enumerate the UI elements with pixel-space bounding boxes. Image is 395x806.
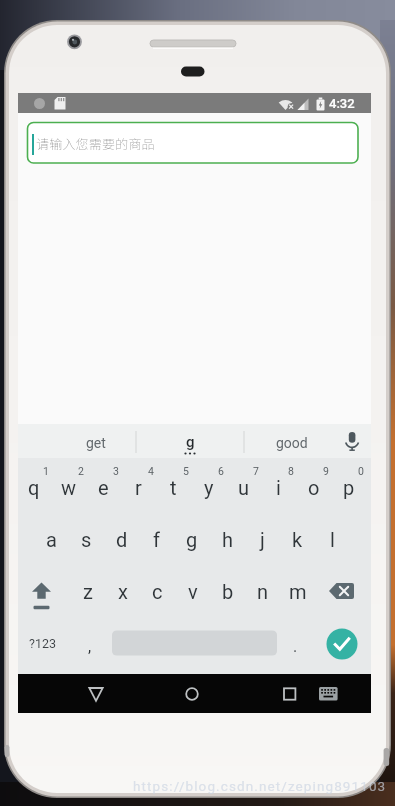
button[interactable]: z [70, 564, 105, 618]
button[interactable]: l [315, 512, 350, 566]
staticText: a [46, 528, 57, 551]
staticText: ?123 [29, 636, 56, 651]
staticText: 7 [253, 465, 259, 477]
button[interactable]: v [175, 564, 210, 618]
staticText: 4 [148, 465, 154, 477]
button[interactable]: . [277, 619, 313, 673]
staticText: 5 [183, 465, 189, 477]
staticText: w [61, 476, 77, 499]
staticText: z [83, 580, 93, 603]
button[interactable]: p [331, 464, 366, 510]
staticText: q [28, 476, 40, 499]
button[interactable]: good [248, 428, 336, 458]
staticText: v [188, 580, 198, 603]
button[interactable]: get [51, 428, 141, 458]
button[interactable] [66, 674, 126, 713]
staticText: 2 [78, 465, 84, 477]
staticText: 4:32 [329, 96, 355, 111]
button[interactable]: 请输入您需要的商品 [28, 123, 359, 164]
staticText: l [330, 528, 335, 551]
staticText: n [257, 580, 269, 603]
button[interactable]: m [280, 564, 315, 618]
staticText: r [135, 476, 142, 499]
button[interactable]: y [191, 464, 226, 510]
staticText: 3 [113, 465, 119, 477]
button[interactable]: f [139, 512, 174, 566]
button[interactable]: g [140, 427, 240, 457]
staticText: g [186, 528, 198, 551]
button[interactable] [338, 424, 368, 458]
staticText: s [81, 528, 92, 551]
staticText: g [186, 433, 195, 451]
staticText: , [88, 637, 92, 656]
button[interactable]: b [210, 564, 245, 618]
staticText: y [204, 476, 214, 499]
button[interactable] [260, 674, 320, 713]
button[interactable]: a [34, 512, 69, 566]
button[interactable]: c [140, 564, 175, 618]
button[interactable]: o [296, 464, 331, 510]
staticText: https://blog.csdn.net/zeping891103 [133, 778, 387, 794]
staticText: get [86, 435, 106, 451]
staticText: b [222, 580, 234, 603]
staticText: h [222, 528, 234, 551]
staticText: 请输入您需要的商品 [36, 134, 155, 153]
button[interactable] [320, 674, 358, 713]
button[interactable]: g [174, 512, 209, 566]
staticText: f [153, 528, 160, 551]
button[interactable]: x [105, 564, 140, 618]
staticText: good [276, 435, 308, 451]
staticText: x [118, 580, 128, 603]
button[interactable]: k [280, 512, 315, 566]
button[interactable]: u [226, 464, 261, 510]
button[interactable]: , [70, 619, 110, 673]
button[interactable]: d [104, 512, 139, 566]
button[interactable]: ?123 [18, 616, 67, 670]
button[interactable] [162, 674, 222, 713]
staticText: e [98, 476, 109, 499]
button[interactable]: h [210, 512, 245, 566]
button[interactable]: i [261, 464, 296, 510]
button[interactable]: w [51, 464, 86, 510]
staticText: 9 [323, 465, 329, 477]
button[interactable]: n [245, 564, 280, 618]
staticText: d [116, 528, 128, 551]
staticText: o [308, 476, 320, 499]
staticText: p [343, 476, 355, 499]
staticText: 8 [288, 465, 294, 477]
button[interactable]: s [69, 512, 104, 566]
staticText: 0 [358, 465, 364, 477]
staticText: k [292, 528, 303, 551]
staticText: m [289, 580, 307, 603]
staticText: j [260, 528, 265, 551]
staticText: 1 [43, 465, 49, 477]
button[interactable]: t [156, 464, 191, 510]
button[interactable]: q [16, 464, 51, 510]
staticText: . [293, 637, 298, 656]
button[interactable] [18, 566, 69, 620]
staticText: 6 [218, 465, 224, 477]
button[interactable] [326, 628, 358, 660]
button[interactable] [320, 566, 371, 620]
staticText: i [276, 476, 281, 499]
button[interactable]: e [86, 464, 121, 510]
button[interactable]: j [245, 512, 280, 566]
staticText: t [170, 476, 177, 499]
staticText: u [238, 476, 250, 499]
button[interactable]: r [121, 464, 156, 510]
staticText: c [152, 580, 163, 603]
